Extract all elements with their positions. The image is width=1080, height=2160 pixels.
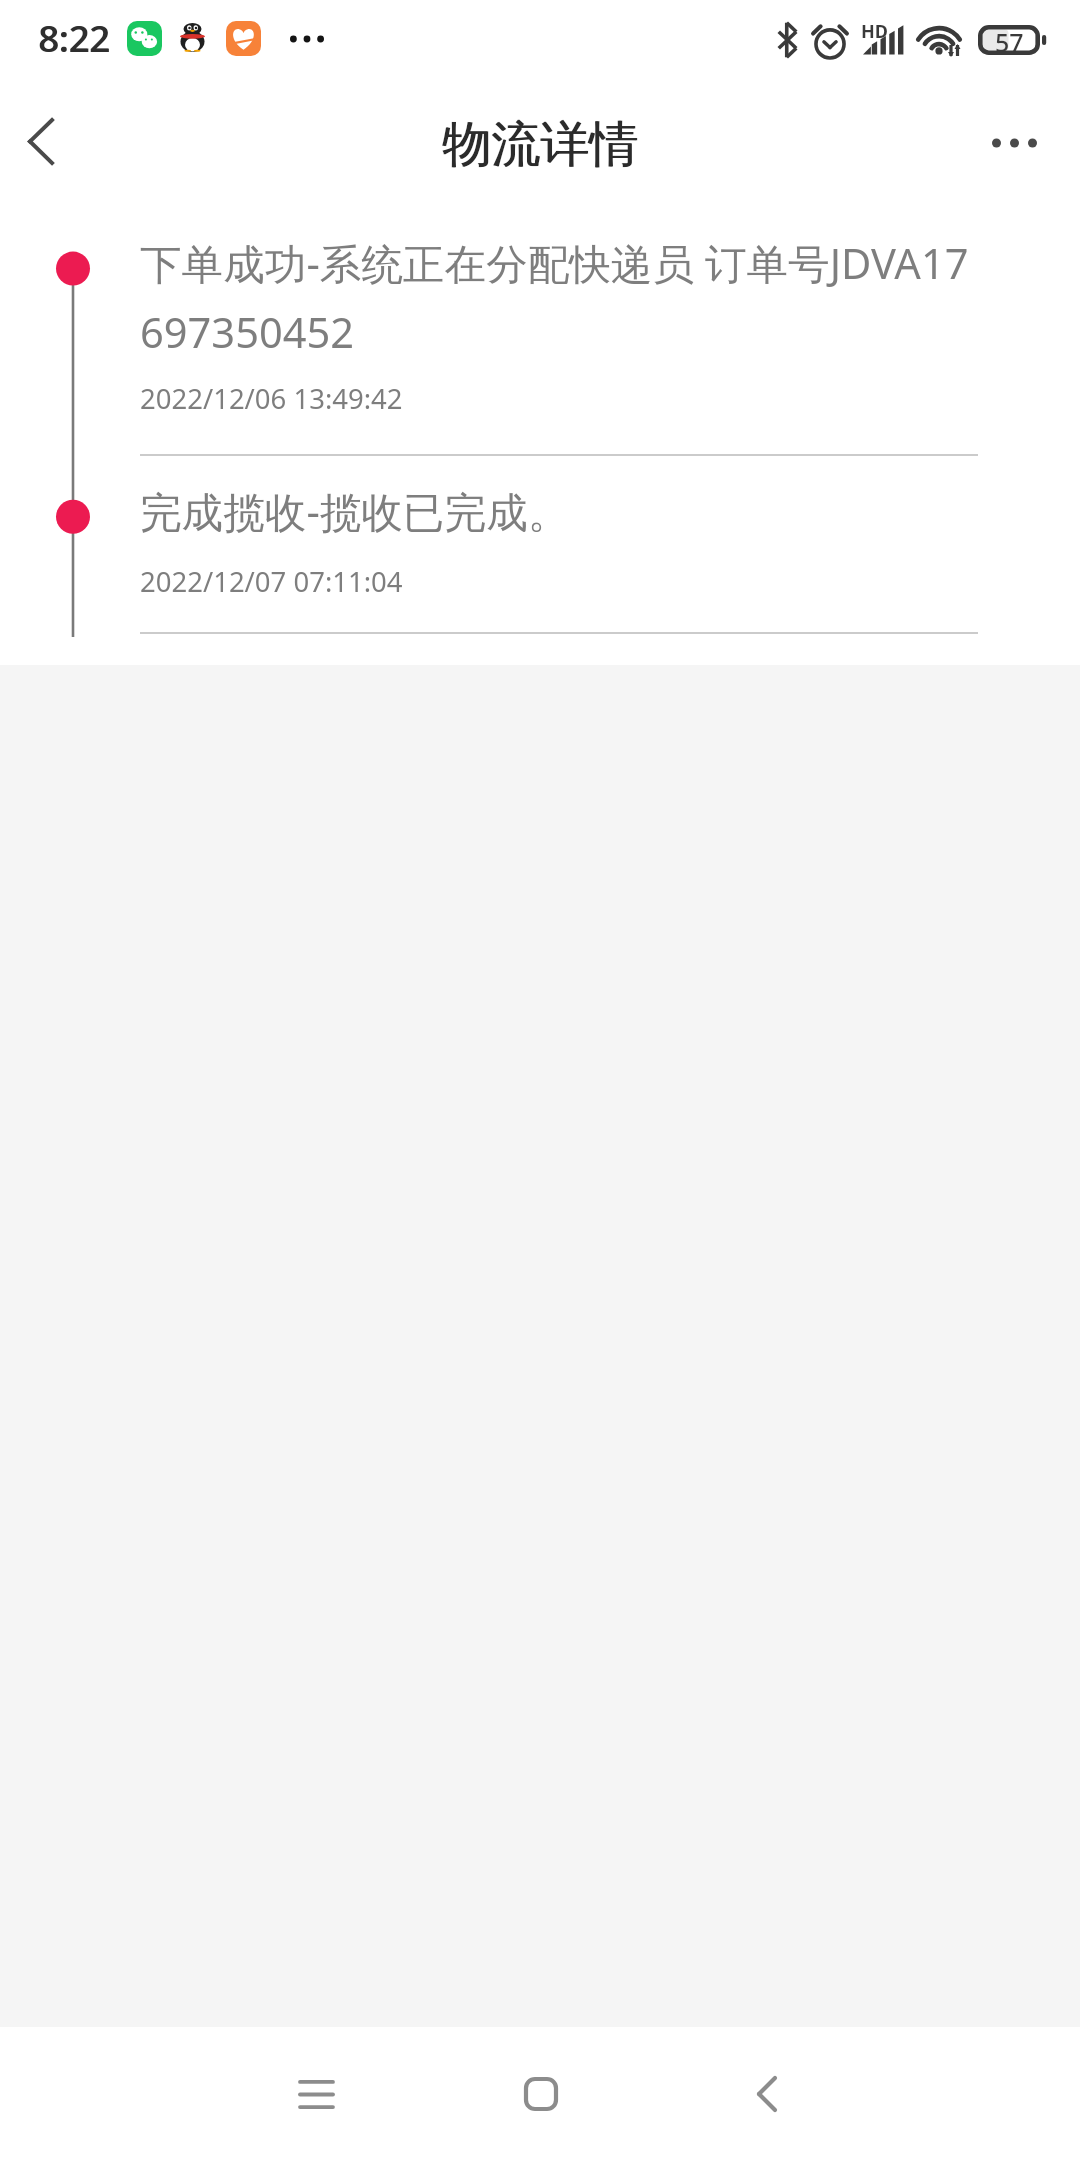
staticText: 2022/12/07 07:11:04 bbox=[140, 563, 403, 600]
staticText: 8:22 bbox=[38, 14, 110, 63]
button[interactable]: More options bbox=[959, 88, 1069, 198]
button[interactable]: Recent apps bbox=[261, 2039, 371, 2149]
staticText: 完成揽收-揽收已完成。 bbox=[140, 483, 570, 540]
staticText: 物流详情 bbox=[442, 114, 638, 176]
staticText: 697350452 bbox=[140, 304, 355, 361]
button[interactable]: Home bbox=[486, 2039, 596, 2149]
staticText: 8:22 bbox=[39, 14, 111, 63]
button[interactable]: 下单成功-系统正在分配快递员 订单号JDVA17 bbox=[0, 215, 1080, 455]
staticText: 57 bbox=[995, 25, 1024, 55]
staticText: 物流详情 bbox=[443, 114, 639, 176]
button[interactable]: 完成揽收-揽收已完成。 bbox=[0, 457, 1080, 635]
staticText: 2022/12/06 13:49:42 bbox=[140, 380, 403, 417]
staticText: 下单成功-系统正在分配快递员 订单号JDVA17 bbox=[140, 235, 969, 292]
staticText: HD bbox=[861, 19, 888, 44]
button[interactable]: Back bbox=[712, 2039, 822, 2149]
button[interactable]: Back bbox=[0, 86, 96, 196]
